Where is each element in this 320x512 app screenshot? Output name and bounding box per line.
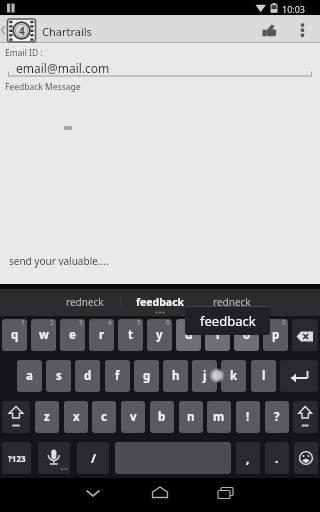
staticText: p xyxy=(272,327,280,343)
button[interactable]: a xyxy=(17,360,42,392)
button[interactable]: c xyxy=(92,401,116,433)
button[interactable]: o xyxy=(234,319,259,351)
staticText: send your valuable.... xyxy=(9,254,109,268)
button[interactable] xyxy=(250,17,282,42)
button[interactable]: . xyxy=(265,442,289,474)
staticText: z xyxy=(44,409,50,425)
staticText: feedback xyxy=(136,295,185,309)
button[interactable]: u xyxy=(176,319,201,351)
staticText: c xyxy=(101,409,107,425)
staticText: u xyxy=(185,327,193,343)
button[interactable] xyxy=(293,401,318,433)
staticText: 0 xyxy=(282,319,286,327)
staticText: 8 xyxy=(224,319,228,327)
button[interactable]: k xyxy=(221,360,246,392)
button[interactable] xyxy=(2,401,30,433)
button[interactable]: , xyxy=(236,442,260,474)
button[interactable]: ?123 xyxy=(2,442,31,474)
button[interactable]: p xyxy=(263,319,288,351)
staticText: 4 xyxy=(108,319,112,327)
staticText: feedback xyxy=(200,312,256,330)
button[interactable]: x xyxy=(64,401,88,433)
staticText: ?123 xyxy=(8,453,26,464)
staticText: d xyxy=(84,368,92,384)
button[interactable]: z xyxy=(35,401,59,433)
staticText: 10:03 xyxy=(282,3,306,15)
button[interactable]: s xyxy=(46,360,71,392)
staticText: o xyxy=(243,327,251,343)
button[interactable] xyxy=(73,483,113,509)
staticText: s xyxy=(56,368,62,384)
button[interactable]: n xyxy=(179,401,203,433)
button[interactable]: ! xyxy=(236,401,260,433)
staticText: w xyxy=(39,327,49,343)
staticText: 5 xyxy=(137,319,141,327)
button[interactable] xyxy=(290,17,315,42)
button[interactable]: r xyxy=(89,319,114,351)
staticText: 2 xyxy=(50,319,54,327)
button[interactable]: / xyxy=(77,442,109,474)
staticText: 4 xyxy=(19,24,25,38)
button[interactable]: redneck xyxy=(53,290,117,314)
staticText: Chartrails xyxy=(42,24,92,39)
staticText: / xyxy=(91,450,96,466)
button[interactable]: redneck xyxy=(200,290,264,314)
button[interactable]: l xyxy=(251,360,276,392)
button[interactable]: d xyxy=(75,360,100,392)
staticText: 1 xyxy=(21,319,25,327)
button[interactable]: g xyxy=(134,360,159,392)
button[interactable] xyxy=(280,360,318,392)
staticText: l xyxy=(262,368,266,384)
staticText: f xyxy=(115,368,120,384)
button[interactable]: i xyxy=(205,319,230,351)
staticText: h xyxy=(172,368,180,384)
staticText: t xyxy=(128,327,133,343)
staticText: a xyxy=(26,368,33,384)
button[interactable]: t xyxy=(118,319,143,351)
button[interactable]: ? xyxy=(265,401,289,433)
button[interactable]: m xyxy=(207,401,231,433)
button[interactable]: v xyxy=(121,401,145,433)
button[interactable]: b xyxy=(150,401,174,433)
staticText: redneck xyxy=(66,295,104,309)
staticText: r xyxy=(99,327,105,343)
staticText: g xyxy=(143,368,151,384)
staticText: b xyxy=(158,409,166,425)
staticText: n xyxy=(187,409,195,425)
button[interactable]: e xyxy=(60,319,85,351)
staticText: redneck xyxy=(213,295,251,309)
staticText: ! xyxy=(246,409,250,425)
button[interactable]: q xyxy=(2,319,27,351)
staticText: 6 xyxy=(166,319,170,327)
staticText: . xyxy=(275,450,279,466)
staticText: , xyxy=(246,450,250,466)
staticText: email@mail.com xyxy=(16,60,110,76)
button[interactable] xyxy=(294,442,318,474)
button[interactable] xyxy=(6,56,314,78)
button[interactable]: w xyxy=(31,319,56,351)
staticText: y xyxy=(156,327,163,343)
staticText: v xyxy=(130,409,137,425)
button[interactable]: h xyxy=(163,360,188,392)
button[interactable]: feedback xyxy=(123,290,197,314)
button[interactable]: j xyxy=(192,360,217,392)
button[interactable] xyxy=(292,319,318,351)
staticText: 9 xyxy=(253,319,257,327)
button[interactable] xyxy=(207,483,247,509)
button[interactable] xyxy=(38,442,70,474)
staticText: ? xyxy=(274,409,280,425)
staticText: j xyxy=(203,368,207,384)
button[interactable]: y xyxy=(147,319,172,351)
staticText: k xyxy=(230,368,238,384)
staticText: m xyxy=(213,409,225,425)
staticText: Email ID : xyxy=(5,47,43,59)
button[interactable]: f xyxy=(105,360,130,392)
staticText: x xyxy=(73,409,80,425)
staticText: i xyxy=(216,327,220,343)
staticText: 3 xyxy=(79,319,83,327)
staticText: q xyxy=(11,327,19,343)
button[interactable] xyxy=(140,483,180,509)
